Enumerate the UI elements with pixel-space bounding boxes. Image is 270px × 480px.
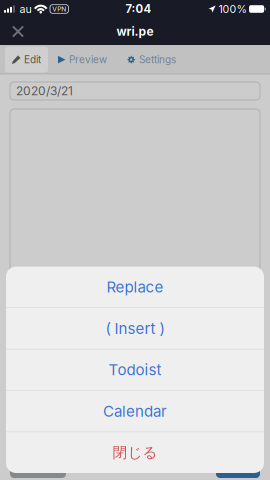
button[interactable]: Settings: [117, 47, 186, 73]
staticText: 閉じる: [112, 443, 157, 462]
staticText: Calendar: [103, 402, 167, 420]
button[interactable]: ( Insert ): [105, 308, 164, 349]
staticText: 100%: [219, 2, 247, 15]
staticText: ( Insert ): [105, 319, 164, 337]
staticText: 7:04: [125, 2, 151, 16]
staticText: Todoist: [108, 361, 161, 379]
button[interactable]: Close: [0, 18, 36, 45]
staticText: Settings: [139, 54, 176, 66]
button[interactable]: 閉じる: [112, 432, 157, 473]
button[interactable]: Calendar: [103, 391, 167, 432]
button[interactable]: Replace: [106, 267, 163, 307]
button[interactable]: Todoist: [108, 349, 161, 390]
staticText: au: [19, 2, 31, 15]
staticText: 2020/3/21: [16, 84, 73, 98]
button[interactable]: Edit: [5, 47, 48, 73]
staticText: Preview: [69, 54, 107, 66]
button[interactable]: Preview: [48, 47, 117, 73]
staticText: VPN: [52, 5, 66, 13]
staticText: Replace: [106, 278, 163, 296]
staticText: Edit: [24, 54, 41, 66]
staticText: wri.pe: [116, 24, 153, 39]
